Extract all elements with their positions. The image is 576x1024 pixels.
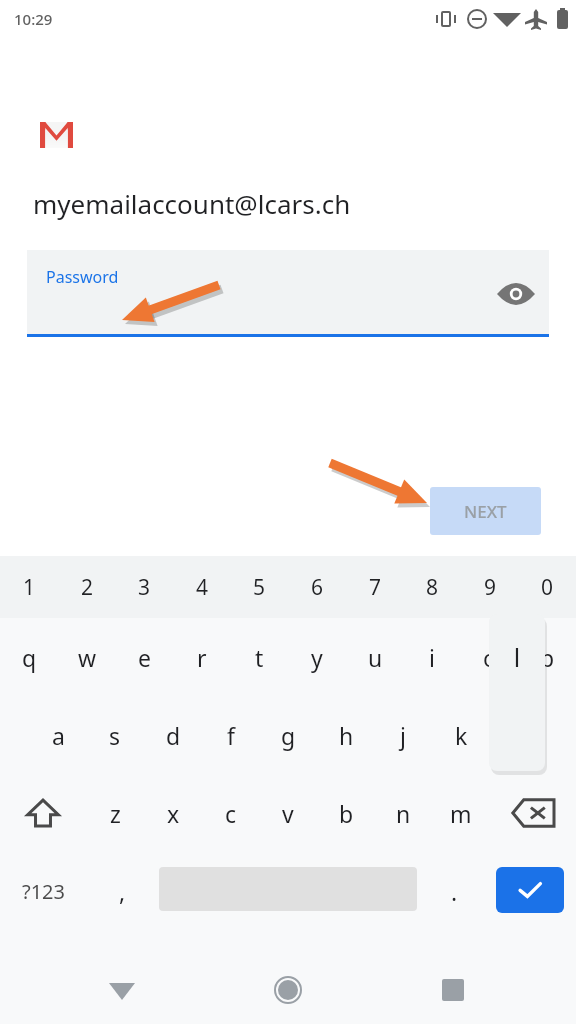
staticText: t [255,642,264,673]
staticText: v [282,798,294,829]
button[interactable]: a [29,696,87,774]
button[interactable]: 7 [346,556,404,618]
staticText: 3 [138,573,151,602]
staticText: 0 [541,573,554,602]
button[interactable]: 2 [58,556,116,618]
staticText: Password [46,266,119,288]
staticText: , [119,876,126,907]
button[interactable]: m [432,774,490,852]
button[interactable]: 5 [230,556,288,618]
button[interactable]: y [288,618,346,696]
button[interactable]: Shift [0,774,86,852]
button[interactable]: p [518,618,576,696]
staticText: s [109,720,121,751]
staticText: e [138,642,151,673]
staticText: 5 [253,573,266,602]
button[interactable]: t [230,618,288,696]
staticText: 8 [426,573,439,602]
button[interactable]: i [403,618,461,696]
button[interactable]: , [86,852,158,930]
staticText: m [450,798,472,829]
staticText: g [281,720,296,751]
button[interactable]: Password [27,250,549,338]
button[interactable]: u [346,618,404,696]
staticText: d [166,720,181,751]
button[interactable]: 3 [115,556,173,618]
button[interactable]: o [461,618,519,696]
staticText: 1 [23,573,36,602]
staticText: z [110,798,121,829]
staticText: a [52,720,65,751]
staticText: y [311,642,323,673]
button[interactable]: e [115,618,173,696]
button[interactable]: 0 [518,556,576,618]
staticText: 6 [311,573,324,602]
button[interactable]: z [86,774,144,852]
staticText: p [540,642,555,673]
button[interactable]: Enter [496,867,564,913]
button[interactable]: Backspace [490,774,576,852]
staticText: 4 [196,573,209,602]
button[interactable]: 4 [173,556,231,618]
button[interactable]: r [173,618,231,696]
button[interactable]: n [374,774,432,852]
staticText: l [489,640,545,674]
staticText: f [227,720,235,751]
button[interactable]: Home [244,956,332,1024]
staticText: u [368,642,383,673]
staticText: q [22,642,37,673]
button[interactable]: NEXT [430,487,541,535]
button[interactable]: x [144,774,202,852]
button[interactable]: c [202,774,260,852]
staticText: . [451,876,458,907]
button[interactable]: . [418,852,490,930]
button[interactable]: g [259,696,317,774]
staticText: ?123 [22,878,65,905]
button[interactable]: 6 [288,556,346,618]
staticText: NEXT [464,500,507,523]
staticText: k [455,720,468,751]
staticText: r [197,642,207,673]
button[interactable]: s [86,696,144,774]
button[interactable]: 9 [461,556,519,618]
button[interactable]: ?123 [0,852,86,930]
button[interactable]: Recent apps [409,956,497,1024]
button[interactable]: h [317,696,375,774]
staticText: 10:29 [14,9,53,29]
button[interactable]: w [58,618,116,696]
staticText: n [396,798,411,829]
button[interactable]: Back [78,956,166,1024]
button[interactable]: v [259,774,317,852]
staticText: w [78,642,97,673]
staticText: 9 [484,573,497,602]
button[interactable]: f [202,696,260,774]
staticText: myemailaccount@lcars.ch [33,186,351,221]
staticText: b [339,798,354,829]
button[interactable]: Show password [494,272,538,316]
button[interactable]: j [374,696,432,774]
staticText: 7 [369,573,382,602]
button[interactable]: k [432,696,490,774]
staticText: o [483,642,497,673]
button[interactable]: 8 [403,556,461,618]
button[interactable]: 1 [0,556,58,618]
button[interactable]: d [144,696,202,774]
staticText: j [400,720,406,751]
staticText: h [339,720,354,751]
staticText: x [167,798,180,829]
button[interactable]: b [317,774,375,852]
button[interactable]: q [0,618,58,696]
staticText: 2 [81,573,94,602]
staticText: c [225,798,237,829]
button[interactable]: l [490,696,548,774]
staticText: i [429,642,435,673]
